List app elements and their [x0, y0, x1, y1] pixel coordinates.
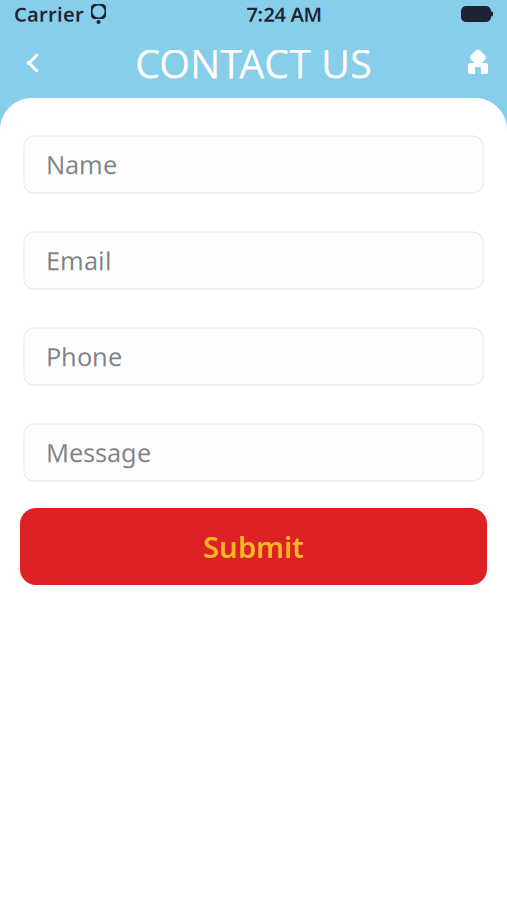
button[interactable]: Phone — [0, 328, 507, 385]
staticText: Name — [46, 148, 117, 181]
staticText: Email — [46, 244, 112, 277]
button[interactable]: Back — [2, 36, 56, 90]
staticText: Submit — [203, 527, 304, 566]
staticText: CONTACT US — [135, 36, 372, 89]
button[interactable]: Message — [0, 424, 507, 481]
staticText: Message — [46, 436, 151, 469]
button[interactable]: Home — [451, 36, 505, 90]
button[interactable]: Name — [0, 136, 507, 193]
button[interactable]: Submit — [0, 508, 507, 585]
staticText: 7:24 AM — [246, 1, 322, 27]
staticText: Carrier — [14, 1, 84, 27]
staticText: Phone — [46, 340, 122, 373]
button[interactable]: Email — [0, 232, 507, 289]
